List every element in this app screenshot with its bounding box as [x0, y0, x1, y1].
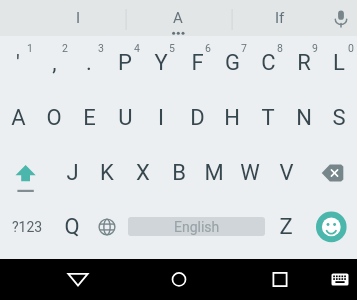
button[interactable]: L [321, 36, 357, 90]
staticText: B [172, 160, 186, 186]
staticText: D [190, 105, 205, 131]
button[interactable]: Recent apps [260, 259, 300, 300]
button[interactable]: Y [143, 36, 179, 90]
staticText: Z [279, 214, 293, 240]
staticText: X [136, 160, 150, 186]
button[interactable]: Home [159, 259, 199, 300]
staticText: A [11, 105, 26, 131]
staticText: G [225, 50, 240, 76]
button[interactable]: N [286, 91, 322, 145]
staticText: 9 [312, 42, 318, 54]
staticText: L [333, 50, 345, 76]
button[interactable]: Q [54, 200, 90, 254]
staticText: R [297, 50, 311, 76]
button[interactable]: English [125, 200, 268, 254]
staticText: F [191, 50, 204, 76]
staticText: 7 [241, 42, 247, 54]
button[interactable]: ' [0, 36, 36, 90]
staticText: 0 [348, 42, 354, 54]
button[interactable]: A [133, 0, 223, 36]
button[interactable]: . [71, 36, 107, 90]
staticText: ' [16, 50, 20, 76]
staticText: I [76, 9, 81, 27]
staticText: Y [154, 50, 168, 76]
button[interactable]: A [0, 91, 36, 145]
button[interactable]: ?123 [0, 200, 54, 254]
button[interactable]: M [196, 146, 232, 200]
staticText: 8 [277, 42, 283, 54]
staticText: U [118, 105, 133, 131]
button[interactable]: S [321, 91, 357, 145]
staticText: I [158, 105, 164, 131]
staticText: 2 [62, 42, 68, 54]
staticText: J [66, 160, 79, 186]
button[interactable]: P [107, 36, 143, 90]
staticText: English [174, 219, 220, 235]
staticText: K [100, 160, 114, 186]
button[interactable]: X [125, 146, 161, 200]
staticText: 6 [205, 42, 211, 54]
button[interactable]: D [179, 91, 215, 145]
button[interactable]: Change language [89, 200, 125, 254]
button[interactable]: Backspace [303, 146, 357, 200]
staticText: 5 [169, 42, 175, 54]
button[interactable]: Voice input [325, 0, 357, 36]
staticText: P [118, 50, 132, 76]
button[interactable]: T [250, 91, 286, 145]
staticText: , [52, 50, 57, 76]
button[interactable]: I [33, 0, 123, 36]
button[interactable]: Z [268, 200, 304, 254]
button[interactable]: E [71, 91, 107, 145]
button[interactable]: Shift [0, 146, 54, 200]
staticText: A [173, 9, 183, 27]
staticText: . [86, 50, 92, 76]
button[interactable]: H [214, 91, 250, 145]
staticText: V [279, 160, 294, 186]
staticText: If [275, 9, 285, 27]
button[interactable]: V [268, 146, 304, 200]
button[interactable]: If [235, 0, 325, 36]
button[interactable]: B [161, 146, 197, 200]
staticText: M [204, 160, 224, 186]
button[interactable]: , [36, 36, 72, 90]
staticText: ?123 [12, 219, 43, 235]
staticText: H [224, 105, 240, 131]
button[interactable]: F [179, 36, 215, 90]
button[interactable]: O [36, 91, 72, 145]
staticText: T [261, 105, 275, 131]
button[interactable]: I [143, 91, 179, 145]
button[interactable]: G [214, 36, 250, 90]
button[interactable]: W [232, 146, 268, 200]
staticText: Q [64, 214, 80, 240]
button[interactable]: C [250, 36, 286, 90]
button[interactable]: J [54, 146, 90, 200]
staticText: E [83, 105, 96, 131]
button[interactable]: R [286, 36, 322, 90]
button[interactable]: K [89, 146, 125, 200]
staticText: C [261, 50, 276, 76]
staticText: N [296, 105, 312, 131]
button[interactable]: Emoji [303, 200, 357, 254]
staticText: W [240, 160, 260, 186]
staticText: 4 [134, 42, 140, 54]
button[interactable]: Back [58, 259, 98, 300]
button[interactable]: Switch keyboard [320, 259, 357, 300]
staticText: 3 [98, 42, 104, 54]
staticText: S [332, 105, 346, 131]
staticText: O [46, 105, 62, 131]
staticText: 1 [27, 42, 33, 54]
button[interactable]: U [107, 91, 143, 145]
